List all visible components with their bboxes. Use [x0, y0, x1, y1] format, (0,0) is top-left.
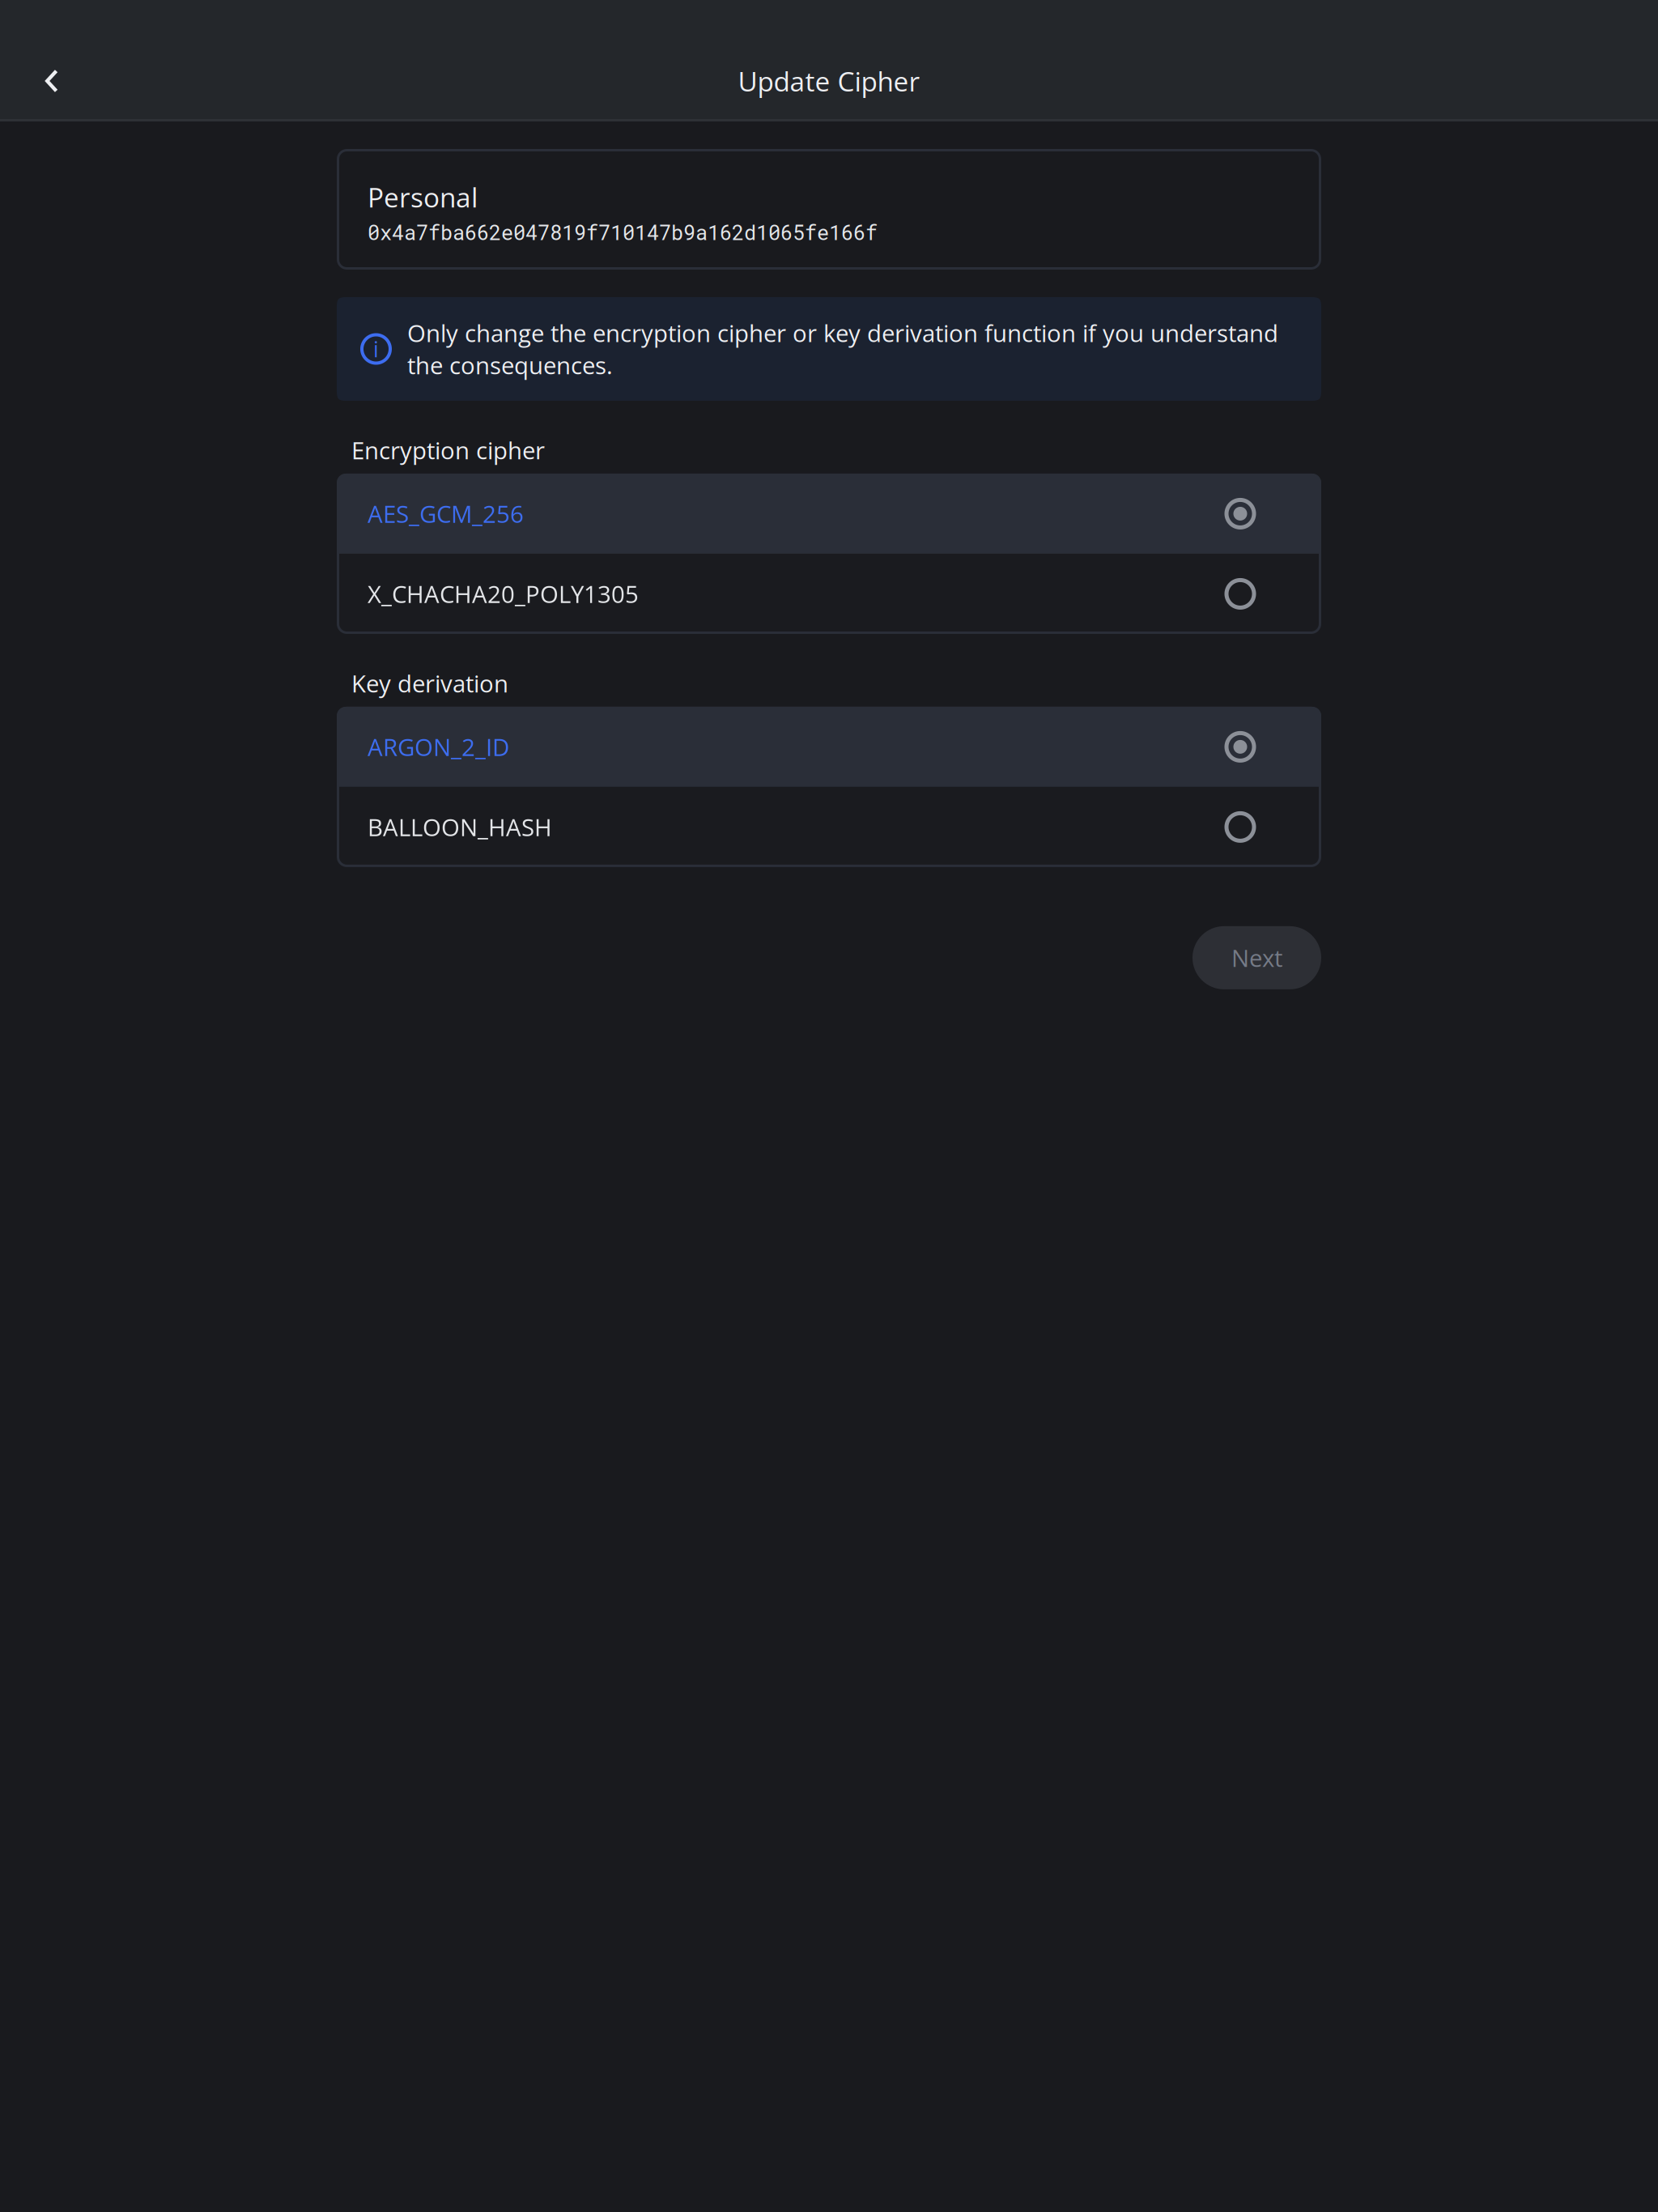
staticText: Encryption cipher [351, 434, 545, 466]
button[interactable]: ARGON_2_ID [337, 707, 1321, 787]
staticText: BALLOON_HASH [368, 811, 552, 843]
staticText: Next [1231, 942, 1282, 974]
button[interactable]: BALLOON_HASH [337, 787, 1321, 867]
staticText: AES_GCM_256 [368, 498, 524, 530]
staticText: Only change the encryption cipher or key… [407, 317, 1278, 381]
button[interactable]: Next [1192, 926, 1321, 989]
staticText: ARGON_2_ID [368, 731, 509, 763]
button[interactable]: X_CHACHA20_POLY1305 [337, 554, 1321, 634]
staticText: X_CHACHA20_POLY1305 [368, 578, 639, 610]
staticText: Key derivation [351, 667, 508, 699]
staticText: i [373, 334, 379, 364]
staticText: 0x4a7fba662e047819f710147b9a162d1065fe16… [368, 219, 878, 246]
button[interactable]: AES_GCM_256 [337, 474, 1321, 554]
button[interactable]: Back [15, 45, 88, 117]
staticText: Personal [368, 179, 478, 215]
staticText: Update Cipher [738, 63, 920, 99]
